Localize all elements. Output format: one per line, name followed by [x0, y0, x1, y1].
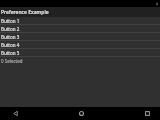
button[interactable]: Home	[74, 107, 88, 120]
staticText: Button 1	[1, 18, 20, 24]
button[interactable]: Button 3	[0, 33, 160, 41]
button[interactable]: Button 5	[0, 49, 160, 57]
button[interactable]: Button 1	[0, 17, 160, 25]
button[interactable]: 0 Selected	[0, 57, 160, 65]
staticText: 0 Selected	[1, 58, 23, 64]
staticText: Preference Example	[1, 9, 49, 16]
staticText: Button 3	[1, 34, 20, 40]
staticText: Button 2	[1, 26, 20, 32]
button[interactable]: Preference Example	[0, 7, 160, 17]
button[interactable]: Button 4	[0, 41, 160, 49]
staticText: Button 5	[1, 50, 20, 56]
button[interactable]: Button 2	[0, 25, 160, 33]
button[interactable]: Back	[8, 107, 22, 120]
staticText: Button 4	[1, 42, 20, 48]
button[interactable]: Recent apps	[140, 107, 154, 120]
